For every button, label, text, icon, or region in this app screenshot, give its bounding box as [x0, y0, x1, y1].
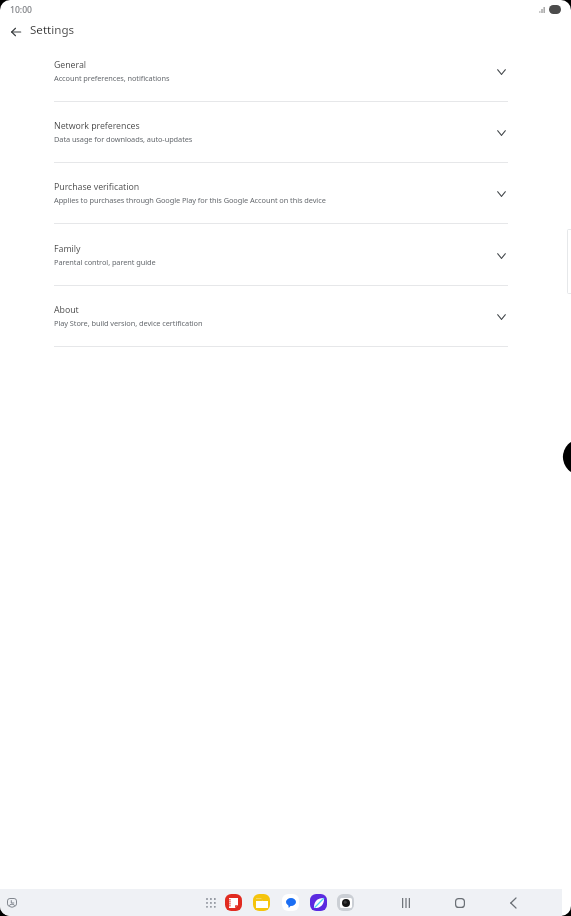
staticText: Purchase verification [54, 181, 140, 193]
button[interactable]: Screen capture [5, 896, 19, 910]
staticText: 10:00 [10, 4, 33, 16]
button[interactable]: Camera [337, 894, 354, 911]
staticText: Play Store, build version, device certif… [54, 318, 203, 328]
staticText: General [54, 59, 87, 71]
button[interactable]: App drawer [204, 896, 218, 910]
button[interactable]: Home [447, 890, 472, 915]
button[interactable]: Samsung Notes [225, 894, 242, 911]
button[interactable]: Messages [282, 894, 299, 911]
button[interactable]: Family [0, 225, 571, 286]
staticText: Data usage for downloads, auto-updates [54, 134, 193, 144]
button[interactable]: Network preferences [0, 102, 571, 163]
staticText: Parental control, parent guide [54, 257, 156, 267]
staticText: Settings [30, 22, 75, 38]
staticText: Account preferences, notifications [54, 73, 170, 83]
button[interactable]: Purchase verification [0, 163, 571, 224]
button[interactable]: My Files [253, 894, 270, 911]
button[interactable]: Internet [310, 894, 327, 911]
staticText: About [54, 304, 79, 316]
button[interactable]: About [0, 286, 571, 347]
staticText: Applies to purchases through Google Play… [54, 195, 326, 205]
button[interactable]: Back [4, 20, 27, 43]
button[interactable]: Back [500, 890, 525, 915]
staticText: Network preferences [54, 120, 140, 132]
button[interactable]: General [0, 41, 571, 102]
button[interactable]: Recent apps [393, 890, 418, 915]
staticText: Family [54, 243, 81, 255]
